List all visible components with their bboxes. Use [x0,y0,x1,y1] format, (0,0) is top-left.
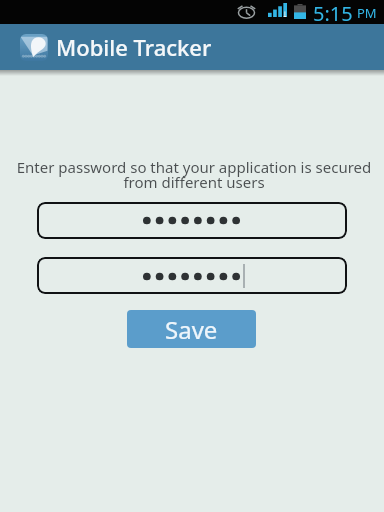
staticText: PM [357,4,377,22]
other: Signal strength [268,3,287,17]
button[interactable]: Confirm password field [37,257,347,294]
staticText: Enter password so that your application … [15,157,373,193]
button[interactable]: Password field [37,202,347,239]
staticText: 5:15 [313,0,353,24]
other: Mobile Tracker logo [20,34,48,61]
staticText: Mobile Tracker [56,32,212,62]
other: Battery [294,4,306,19]
other: Alarm set [237,5,256,19]
button[interactable]: Save [127,310,256,348]
staticText: Save [165,313,218,346]
